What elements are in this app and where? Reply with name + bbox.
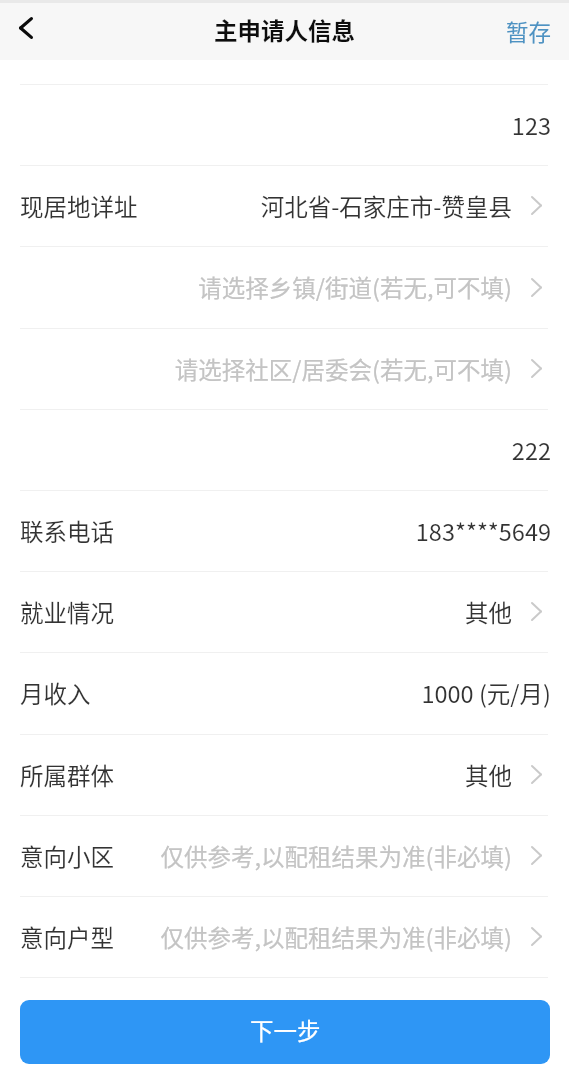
button[interactable]: 222 bbox=[0, 410, 569, 491]
staticText: 222 bbox=[511, 433, 551, 467]
button[interactable]: 下一步 bbox=[20, 1000, 550, 1064]
button[interactable]: Back bbox=[0, 3, 54, 57]
staticText: 其他 bbox=[465, 595, 512, 629]
staticText: 月收入 bbox=[20, 676, 91, 710]
staticText: 其他 bbox=[465, 758, 512, 792]
staticText: 意向小区 bbox=[20, 839, 114, 873]
staticText: 联系电话 bbox=[20, 514, 114, 548]
staticText: 1000 (元/月) bbox=[421, 676, 551, 710]
button[interactable]: 请选择社区/居委会(若无,可不填) bbox=[0, 329, 569, 410]
button[interactable]: 暂存 bbox=[488, 3, 569, 60]
staticText: 暂存 bbox=[506, 15, 552, 48]
button[interactable]: 意向小区 bbox=[0, 816, 569, 897]
button[interactable]: 月收入 bbox=[0, 653, 569, 735]
button[interactable]: 联系电话 bbox=[0, 491, 569, 572]
staticText: 183****5649 bbox=[415, 514, 551, 548]
staticText: 仅供参考,以配租结果为准(非必填) bbox=[160, 920, 512, 954]
button[interactable]: 现居地详址 bbox=[0, 166, 569, 247]
staticText: 请选择乡镇/街道(若无,可不填) bbox=[198, 270, 512, 304]
staticText: 请选择社区/居委会(若无,可不填) bbox=[174, 352, 512, 386]
button[interactable]: 请选择乡镇/街道(若无,可不填) bbox=[0, 247, 569, 329]
button[interactable]: 123 bbox=[0, 85, 569, 166]
staticText: 所属群体 bbox=[20, 758, 114, 792]
staticText: 现居地详址 bbox=[20, 189, 138, 223]
staticText: 123 bbox=[511, 108, 551, 142]
staticText: 意向户型 bbox=[20, 920, 114, 954]
staticText: 就业情况 bbox=[20, 595, 114, 629]
staticText: 仅供参考,以配租结果为准(非必填) bbox=[160, 839, 512, 873]
button[interactable]: 所属群体 bbox=[0, 735, 569, 816]
staticText: 河北省-石家庄市-赞皇县 bbox=[260, 189, 512, 223]
staticText: 下一步 bbox=[250, 1013, 321, 1047]
button[interactable]: 就业情况 bbox=[0, 572, 569, 653]
button[interactable]: 意向户型 bbox=[0, 897, 569, 978]
staticText: 主申请人信息 bbox=[214, 13, 355, 47]
